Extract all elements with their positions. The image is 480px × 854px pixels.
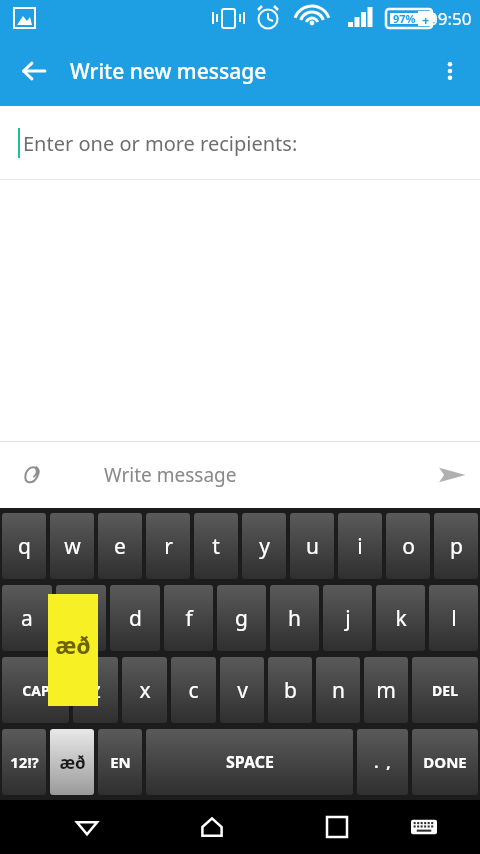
staticText: SPACE (226, 751, 274, 773)
staticText: c (188, 676, 199, 705)
button[interactable]: f (164, 585, 213, 651)
staticText: DONE (423, 752, 467, 772)
staticText: g (235, 604, 248, 633)
button[interactable]: o (386, 513, 430, 579)
staticText: o (402, 532, 415, 561)
staticText: a (21, 604, 33, 633)
staticText: k (395, 604, 407, 633)
staticText: x (139, 676, 151, 705)
button[interactable]: More options (426, 47, 474, 95)
button[interactable]: Send (424, 447, 480, 503)
staticText: æð (55, 629, 91, 660)
staticText: j (345, 604, 351, 633)
button[interactable]: SPACE (146, 729, 353, 795)
button[interactable]: j (323, 585, 372, 651)
button[interactable]: s (56, 585, 106, 651)
staticText: DEL (432, 681, 458, 700)
button[interactable]: Switch keyboard (400, 803, 448, 851)
staticText: 09:50 (428, 7, 472, 30)
button[interactable]: g (217, 585, 266, 651)
staticText: 97% (393, 11, 416, 26)
staticText: d (129, 604, 142, 633)
button[interactable]: 12!? (2, 729, 46, 795)
staticText: f (185, 604, 193, 633)
staticText: n (332, 676, 345, 705)
button[interactable]: z (73, 657, 118, 723)
staticText: m (376, 676, 396, 705)
staticText: EN (110, 752, 131, 772)
staticText: w (64, 532, 81, 561)
staticText: u (306, 532, 319, 561)
button[interactable]: DONE (412, 729, 478, 795)
button[interactable]: Back (10, 47, 58, 95)
button[interactable]: l (429, 585, 478, 651)
button[interactable]: Hide keyboard (63, 803, 111, 851)
button[interactable]: v (220, 657, 264, 723)
button[interactable]: Recent apps (313, 803, 361, 851)
staticText: e (114, 532, 126, 561)
staticText: + (422, 11, 430, 26)
button[interactable]: d (110, 585, 160, 651)
button[interactable]: k (376, 585, 425, 651)
button[interactable]: c (171, 657, 216, 723)
staticText: v (237, 676, 248, 705)
button[interactable]: u (290, 513, 334, 579)
staticText: Write new message (70, 57, 426, 86)
button[interactable]: t (194, 513, 238, 579)
button[interactable]: x (122, 657, 167, 723)
button[interactable]: EN (98, 729, 142, 795)
staticText: q (18, 532, 31, 561)
staticText: p (450, 532, 463, 561)
button[interactable]: q (2, 513, 46, 579)
button[interactable]: p (434, 513, 478, 579)
staticText: r (164, 532, 173, 561)
button[interactable]: Home (188, 803, 236, 851)
staticText: . , (374, 752, 391, 772)
button[interactable]: æð (50, 729, 94, 795)
button[interactable]: r (146, 513, 190, 579)
button[interactable]: m (364, 657, 408, 723)
button[interactable]: b (268, 657, 312, 723)
button[interactable]: . , (357, 729, 408, 795)
button[interactable]: a (2, 585, 52, 651)
staticText: t (212, 532, 220, 561)
staticText: 12!? (10, 752, 39, 772)
button[interactable]: DEL (412, 657, 478, 723)
button[interactable]: n (316, 657, 360, 723)
staticText: b (284, 676, 297, 705)
button[interactable]: Attach (8, 451, 56, 499)
staticText: Enter one or more recipients: (23, 130, 298, 157)
button[interactable]: w (50, 513, 94, 579)
staticText: æð (59, 751, 86, 774)
button[interactable]: CAP (2, 657, 69, 723)
staticText: l (451, 604, 457, 633)
staticText: i (357, 532, 363, 561)
staticText: y (259, 532, 270, 561)
button[interactable]: Write message (104, 462, 424, 488)
button[interactable]: y (242, 513, 286, 579)
button[interactable]: i (338, 513, 382, 579)
button[interactable]: e (98, 513, 142, 579)
staticText: h (288, 604, 301, 633)
staticText: CAP (22, 681, 50, 700)
button[interactable]: h (270, 585, 319, 651)
staticText: z (91, 676, 101, 705)
